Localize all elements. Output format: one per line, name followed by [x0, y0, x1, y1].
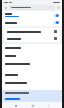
button[interactable]: Back: [46, 103, 51, 108]
button[interactable]: Toggle: [54, 21, 59, 24]
button[interactable]: More options: [4, 35, 60, 42]
button[interactable]: Toggle: [2, 19, 62, 26]
button[interactable]: Toggle: [54, 14, 59, 17]
button[interactable]: Toggle: [2, 11, 62, 19]
button[interactable]: [2, 44, 62, 52]
button[interactable]: More options: [4, 28, 60, 35]
button[interactable]: [2, 52, 62, 60]
button[interactable]: [2, 90, 62, 102]
button[interactable]: More options: [54, 37, 57, 40]
button[interactable]: [2, 71, 62, 79]
button[interactable]: [9, 5, 55, 10]
button[interactable]: [2, 90, 62, 96]
button[interactable]: [2, 96, 62, 102]
button[interactable]: Home: [30, 103, 35, 108]
button[interactable]: [2, 60, 62, 68]
button[interactable]: Account: [57, 6, 60, 9]
button[interactable]: Back: [4, 6, 8, 10]
button[interactable]: More options: [54, 30, 57, 33]
button[interactable]: Recents: [13, 103, 18, 108]
button[interactable]: [2, 79, 62, 87]
